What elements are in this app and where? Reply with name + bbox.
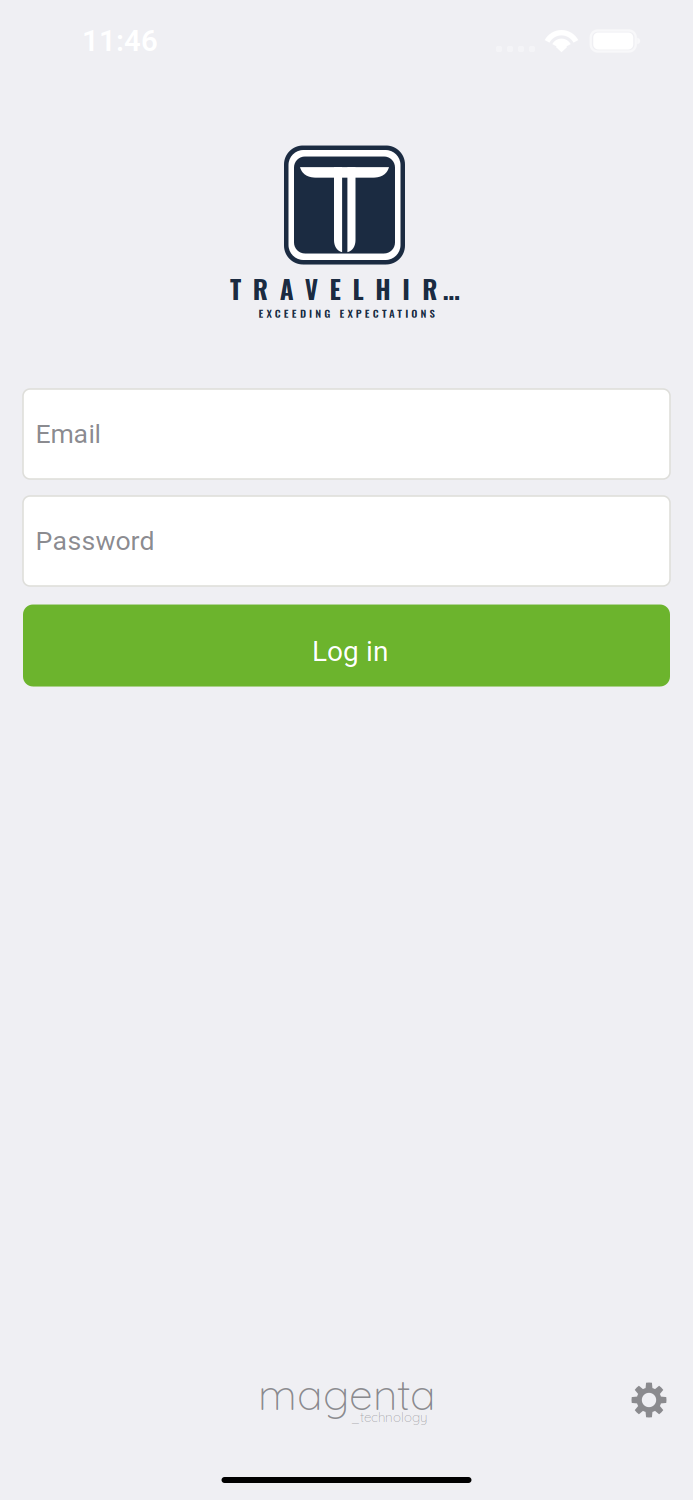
staticText: EXCEEDING EXPECTATIONS [258,305,435,321]
staticText: 11:46 [82,24,158,58]
button[interactable]: Settings [621,1372,677,1428]
button[interactable]: Email [23,389,670,479]
button[interactable]: Password [23,496,670,586]
staticText: Password [35,525,154,557]
button[interactable]: Log in [23,604,670,686]
staticText: _technology [351,1409,427,1425]
staticText: Log in [312,635,388,668]
staticText: TRAVELHIRE [230,270,460,307]
staticText: magenta [258,1367,436,1421]
staticText: Email [35,418,100,450]
